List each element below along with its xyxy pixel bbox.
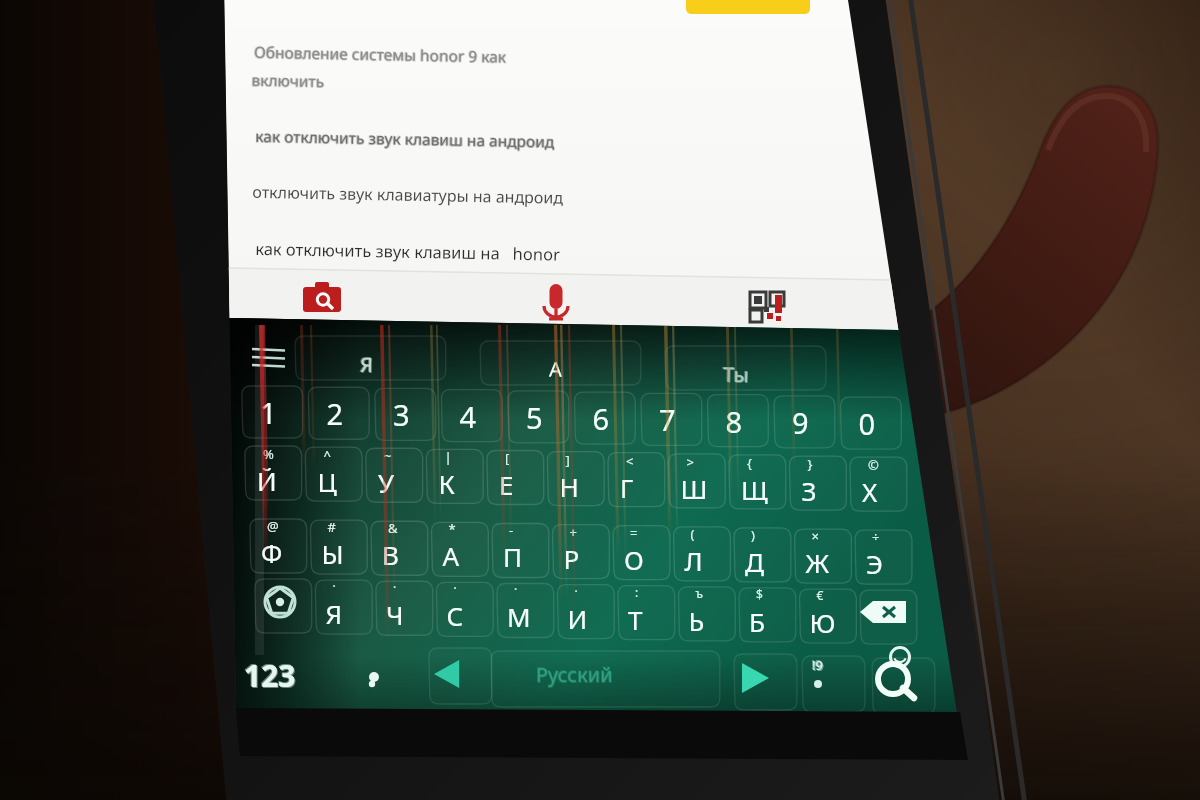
button[interactable]: Phone showing Russian keyboard xyxy=(0,0,1200,800)
